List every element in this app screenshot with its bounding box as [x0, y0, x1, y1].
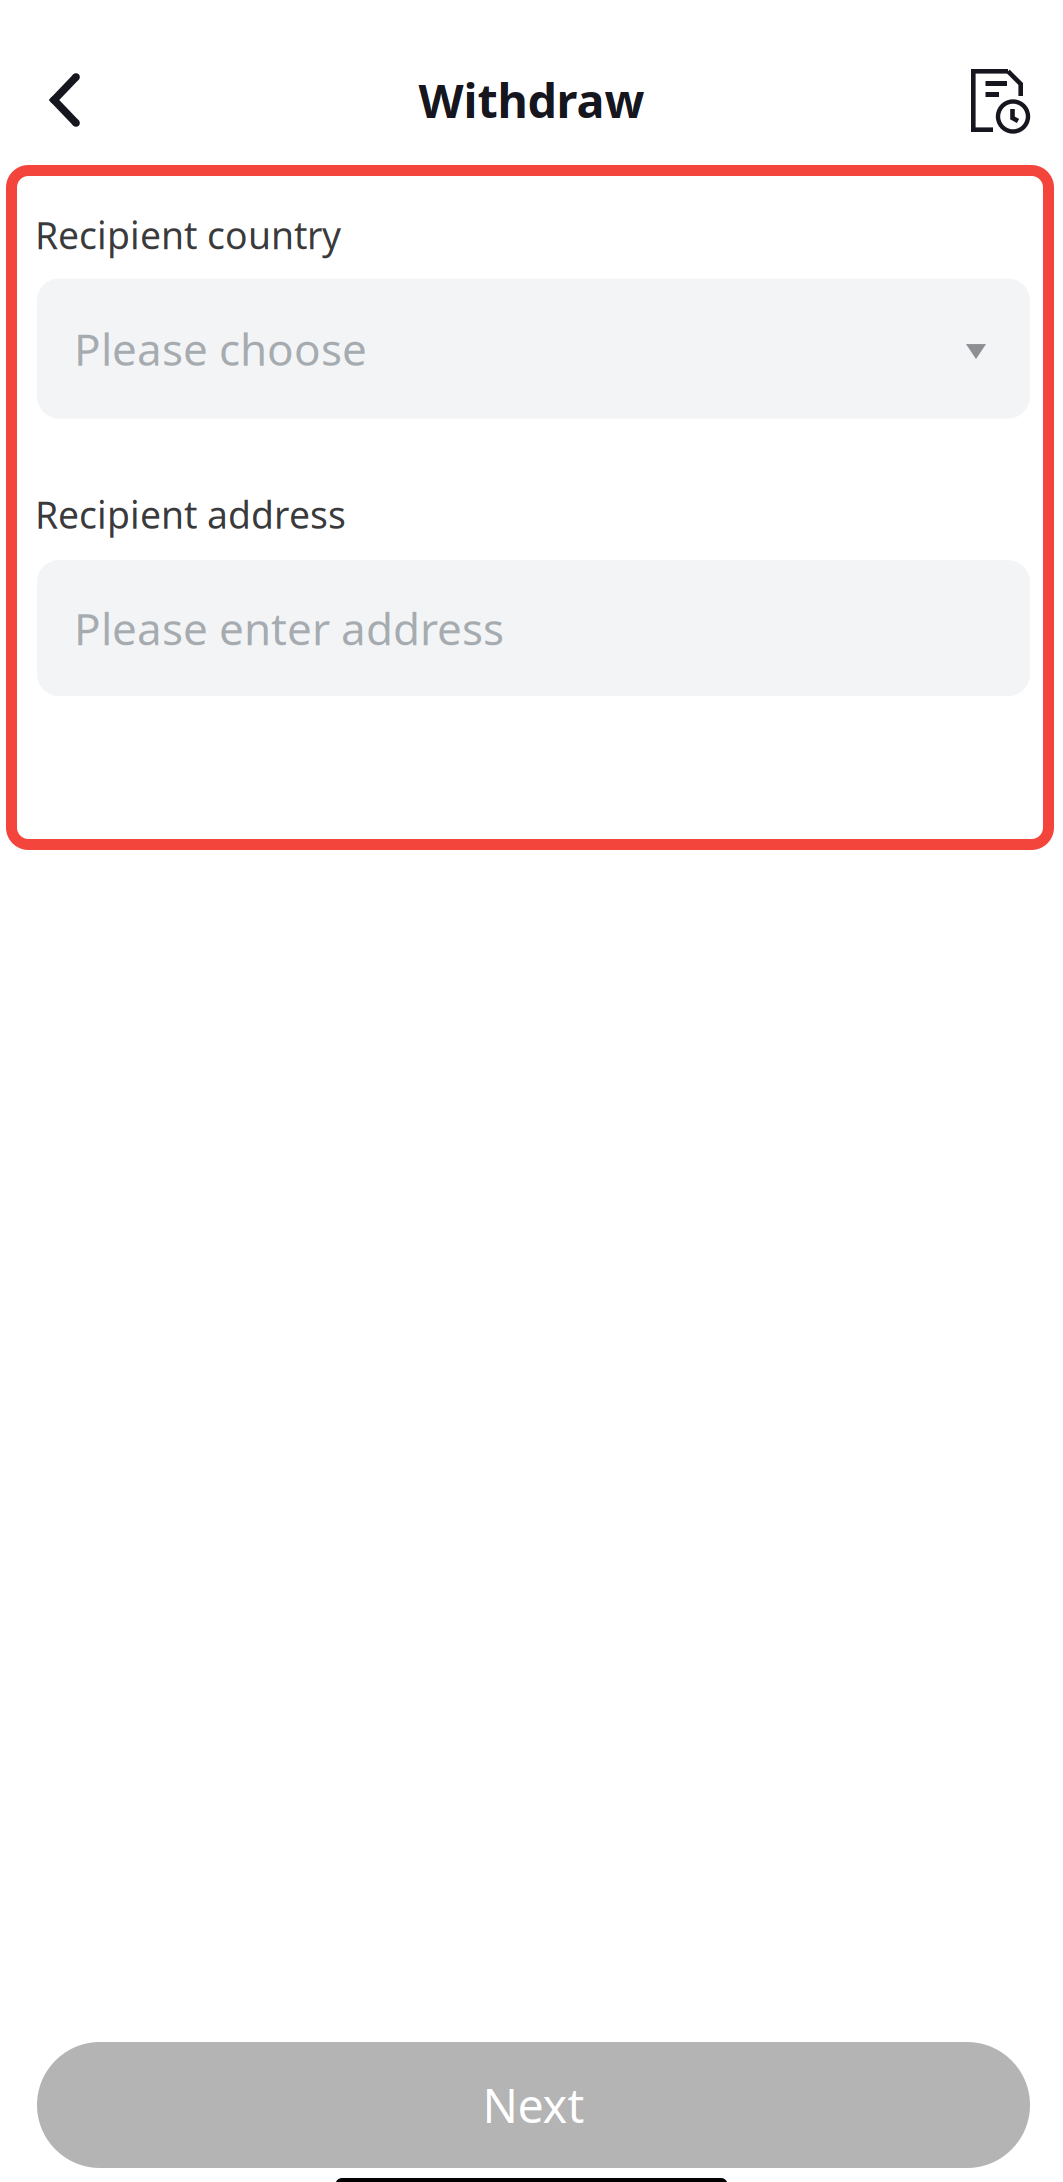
button[interactable]: Please choose — [37, 279, 1030, 419]
staticText: Please choose — [74, 319, 367, 378]
button[interactable]: Please enter address — [37, 560, 1030, 696]
button[interactable]: Back — [0, 35, 130, 165]
staticText: Recipient address — [35, 490, 346, 539]
staticText: Next — [482, 2074, 584, 2136]
button[interactable]: Next — [37, 2042, 1030, 2168]
staticText: Please enter address — [74, 599, 504, 657]
staticText: Recipient country — [35, 210, 341, 260]
staticText: Withdraw — [418, 69, 644, 131]
button[interactable]: Transaction history — [937, 35, 1063, 165]
